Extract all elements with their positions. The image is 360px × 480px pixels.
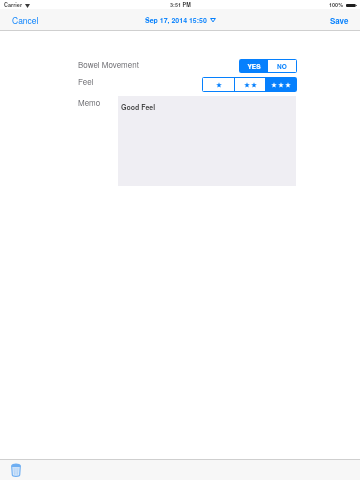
- staticText: Save: [330, 15, 349, 26]
- button[interactable]: 1 star rating: [203, 78, 234, 91]
- staticText: Good Feel: [121, 102, 156, 112]
- button[interactable]: NO: [268, 60, 296, 72]
- staticText: Cancel: [12, 14, 39, 26]
- button[interactable]: Cancel: [0, 10, 49, 30]
- staticText: Memo: [78, 97, 101, 108]
- staticText: Feel: [78, 76, 94, 87]
- button[interactable]: Sep 17, 2014 15:50: [142, 12, 219, 28]
- staticText: 3:51 PM: [170, 1, 191, 9]
- button[interactable]: Good Feel: [118, 96, 296, 186]
- button[interactable]: 2 star rating: [235, 78, 265, 91]
- staticText: Carrier: [4, 1, 23, 9]
- button[interactable]: Save: [320, 11, 360, 30]
- staticText: 100%: [329, 1, 344, 9]
- button[interactable]: 3 star rating: [266, 78, 296, 91]
- staticText: Sep 17, 2014 15:50: [145, 15, 207, 25]
- staticText: YES: [247, 62, 261, 71]
- staticText: NO: [277, 62, 287, 71]
- staticText: Bowel Movement: [78, 59, 139, 70]
- button[interactable]: YES: [240, 60, 267, 72]
- button[interactable]: Delete: [9, 461, 23, 479]
